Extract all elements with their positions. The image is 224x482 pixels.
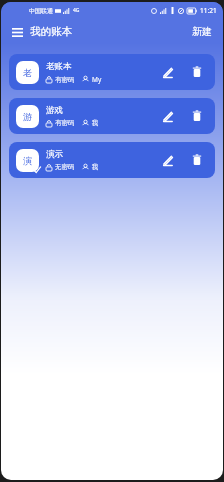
staticText: 游戏 <box>46 105 63 116</box>
button[interactable]: 游 <box>9 98 215 134</box>
button[interactable]: Delete <box>187 62 207 82</box>
staticText: 4G <box>73 7 80 14</box>
staticText: My <box>92 75 102 84</box>
staticText: 我 <box>92 163 99 171</box>
button[interactable]: Edit <box>157 62 177 82</box>
staticText: 我 <box>92 119 99 127</box>
button[interactable]: Delete <box>187 106 207 126</box>
staticText: 有密码 <box>55 119 75 127</box>
staticText: 11:21 <box>200 6 217 15</box>
button[interactable]: Edit <box>157 106 177 126</box>
staticText: 演 <box>23 155 32 166</box>
button[interactable]: 新建 <box>189 22 215 41</box>
button[interactable]: 老 <box>9 54 215 90</box>
button[interactable]: 演 <box>9 142 215 178</box>
staticText: 有密码 <box>55 76 75 84</box>
staticText: 新建 <box>192 25 212 38</box>
staticText: 老 <box>23 67 32 78</box>
button[interactable]: Delete <box>187 150 207 170</box>
button[interactable]: Menu <box>9 24 25 40</box>
staticText: 老账本 <box>46 61 72 72</box>
staticText: 我的账本 <box>30 25 72 38</box>
staticText: 演示 <box>46 149 63 160</box>
button[interactable]: Edit <box>157 150 177 170</box>
staticText: 中国联通 <box>29 7 53 15</box>
staticText: 游 <box>23 111 32 122</box>
staticText: 无密码 <box>55 163 75 171</box>
